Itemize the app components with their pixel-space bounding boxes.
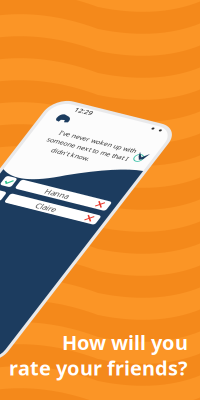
button[interactable]: Claire xyxy=(3,113,125,125)
staticText: someone next to me that I xyxy=(21,42,104,51)
staticText: Claire xyxy=(56,114,77,124)
staticText: Hanna xyxy=(54,96,78,107)
staticText: didn't know. xyxy=(32,52,71,61)
staticText: I've never woken up with xyxy=(27,31,106,40)
button[interactable]: Hanna xyxy=(3,96,125,107)
staticText: rate your friends? xyxy=(9,354,188,381)
staticText: How will you xyxy=(62,329,188,355)
